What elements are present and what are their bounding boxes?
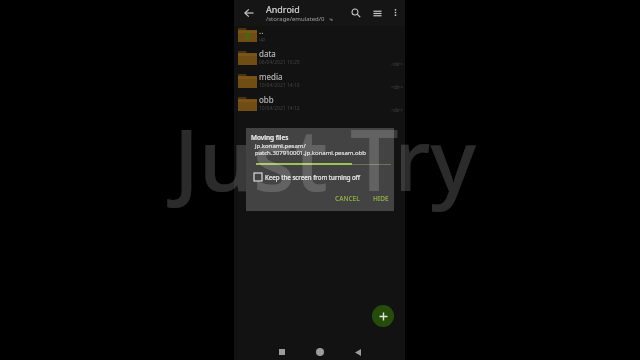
staticText: patch.307910001.jp.konami.pesam.obb	[255, 149, 366, 157]
button[interactable]: Back	[240, 4, 258, 22]
button[interactable]: Search	[347, 4, 365, 22]
staticText: Android	[266, 3, 300, 15]
button[interactable]: Back	[348, 342, 368, 360]
button[interactable]: ..	[234, 23, 405, 46]
staticText: data	[259, 48, 276, 59]
staticText: obb	[259, 94, 274, 105]
button[interactable]: CANCEL	[332, 191, 363, 206]
staticText: /storage/emulated/0	[266, 15, 325, 23]
staticText: jp.konami.pesam/	[255, 142, 306, 150]
button[interactable]: Add	[372, 305, 394, 327]
button[interactable]: Recents	[272, 342, 292, 360]
button[interactable]: HIDE	[370, 191, 392, 206]
button[interactable]: Keep the screen from turning off	[253, 172, 361, 181]
staticText: Just Try	[174, 99, 476, 216]
staticText: 06/04/2021 10:25	[259, 59, 300, 66]
staticText: <dir>	[391, 61, 404, 68]
staticText: ..	[259, 25, 264, 36]
button[interactable]: obb	[234, 92, 405, 115]
button[interactable]: More options	[387, 4, 403, 20]
staticText: up	[259, 36, 266, 43]
button[interactable]: data	[234, 46, 405, 69]
button[interactable]: Home	[310, 342, 330, 360]
staticText: media	[259, 71, 283, 82]
staticText: 10/04/2021 14:10	[259, 82, 300, 89]
staticText: CANCEL	[335, 194, 360, 203]
staticText: HIDE	[373, 194, 389, 203]
button[interactable]: View mode	[368, 4, 386, 22]
staticText: Keep the screen from turning off	[265, 173, 361, 181]
staticText: <dir>	[391, 107, 404, 114]
staticText: 10/04/2021 14:12	[259, 105, 300, 112]
button[interactable]: media	[234, 69, 405, 92]
staticText: Moving files	[251, 133, 289, 142]
staticText: <dir>	[391, 84, 404, 91]
